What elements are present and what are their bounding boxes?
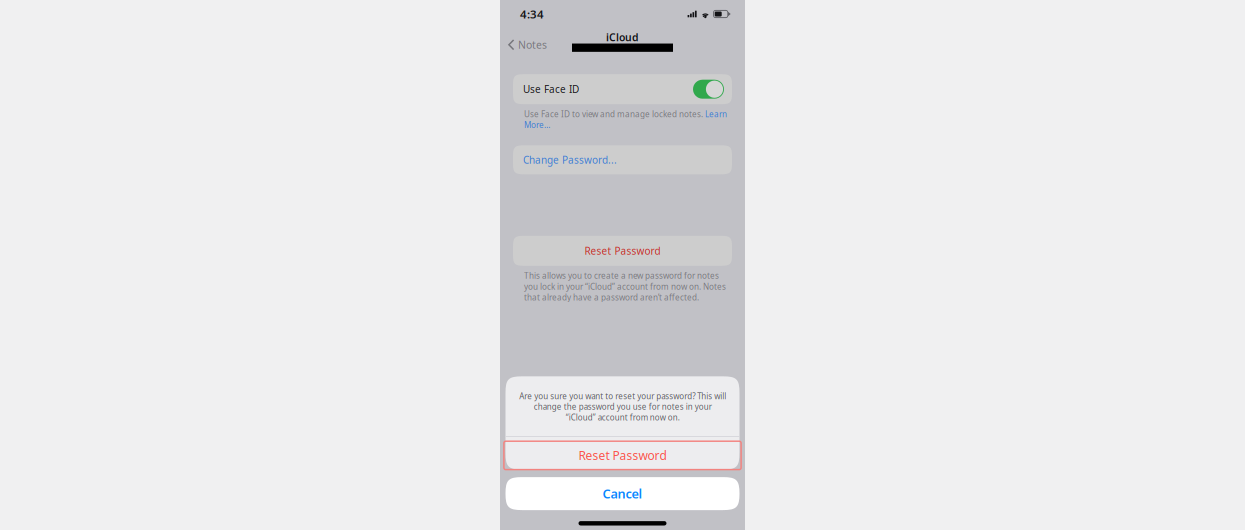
staticText: iCloud <box>606 30 639 44</box>
staticText: Are you sure you want to reset your pass… <box>519 391 726 423</box>
staticText: Cancel <box>602 485 642 502</box>
staticText: Use Face ID <box>523 83 579 96</box>
staticText: Change Password... <box>523 153 617 166</box>
button[interactable]: Notes <box>500 30 553 56</box>
button[interactable]: Cancel <box>505 477 739 510</box>
button[interactable]: Use Face ID <box>513 74 732 104</box>
button[interactable]: Reset Password <box>505 437 739 470</box>
staticText: Notes <box>518 38 547 52</box>
staticText: Reset Password <box>578 447 666 463</box>
button[interactable]: Change Password... <box>513 145 732 174</box>
staticText: Use Face ID to view and manage locked no… <box>524 109 727 130</box>
button[interactable]: Reset Password <box>513 236 732 266</box>
staticText: This allows you to create a new password… <box>524 270 726 303</box>
staticText: 4:34 <box>520 6 544 22</box>
staticText: Reset Password <box>584 244 660 257</box>
